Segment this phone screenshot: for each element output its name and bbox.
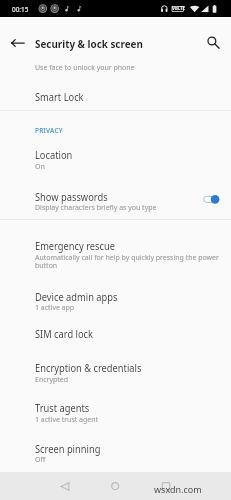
staticText: Security & lock screen bbox=[35, 37, 143, 51]
staticText: SIM card lock bbox=[35, 327, 94, 341]
button[interactable] bbox=[0, 399, 231, 424]
staticText: 1 active app bbox=[35, 302, 75, 312]
staticText: Encryption & credentials bbox=[35, 361, 142, 375]
staticText: Display characters briefly as you type bbox=[35, 202, 157, 212]
staticText: Location bbox=[35, 148, 73, 162]
button[interactable]: Home bbox=[103, 474, 127, 498]
staticText: Use face to unlock your phone bbox=[35, 62, 135, 72]
staticText: Show passwords bbox=[35, 190, 108, 204]
button[interactable] bbox=[0, 326, 231, 343]
staticText: Device admin apps bbox=[35, 290, 118, 304]
staticText: PRIVACY bbox=[35, 126, 63, 136]
button[interactable]: Recent apps bbox=[154, 474, 178, 498]
staticText: 1 active trust agent bbox=[35, 414, 98, 424]
staticText: wsxdn.com bbox=[154, 483, 202, 495]
button[interactable] bbox=[0, 441, 231, 465]
staticText: Off bbox=[35, 454, 46, 464]
button[interactable]: Back bbox=[53, 474, 77, 498]
button[interactable] bbox=[0, 147, 231, 172]
staticText: Encrypted bbox=[35, 374, 68, 384]
staticText: button bbox=[35, 260, 57, 270]
staticText: Automatically call for help by quickly p… bbox=[35, 252, 219, 262]
button[interactable] bbox=[0, 288, 231, 313]
staticText: Screen pinning bbox=[35, 442, 101, 456]
staticText: 00:15 bbox=[12, 4, 29, 14]
staticText: VoLTE bbox=[172, 6, 185, 12]
button[interactable] bbox=[0, 238, 231, 263]
button[interactable]: Back bbox=[6, 31, 30, 55]
staticText: Emergency rescue bbox=[35, 239, 116, 253]
button[interactable]: Show passwords toggle bbox=[200, 188, 224, 212]
staticText: Smart Lock bbox=[35, 90, 84, 104]
button[interactable]: Search bbox=[200, 29, 224, 53]
button[interactable] bbox=[0, 189, 231, 214]
button[interactable] bbox=[0, 360, 231, 385]
staticText: Trust agents bbox=[35, 401, 90, 415]
staticText: On bbox=[35, 161, 45, 171]
